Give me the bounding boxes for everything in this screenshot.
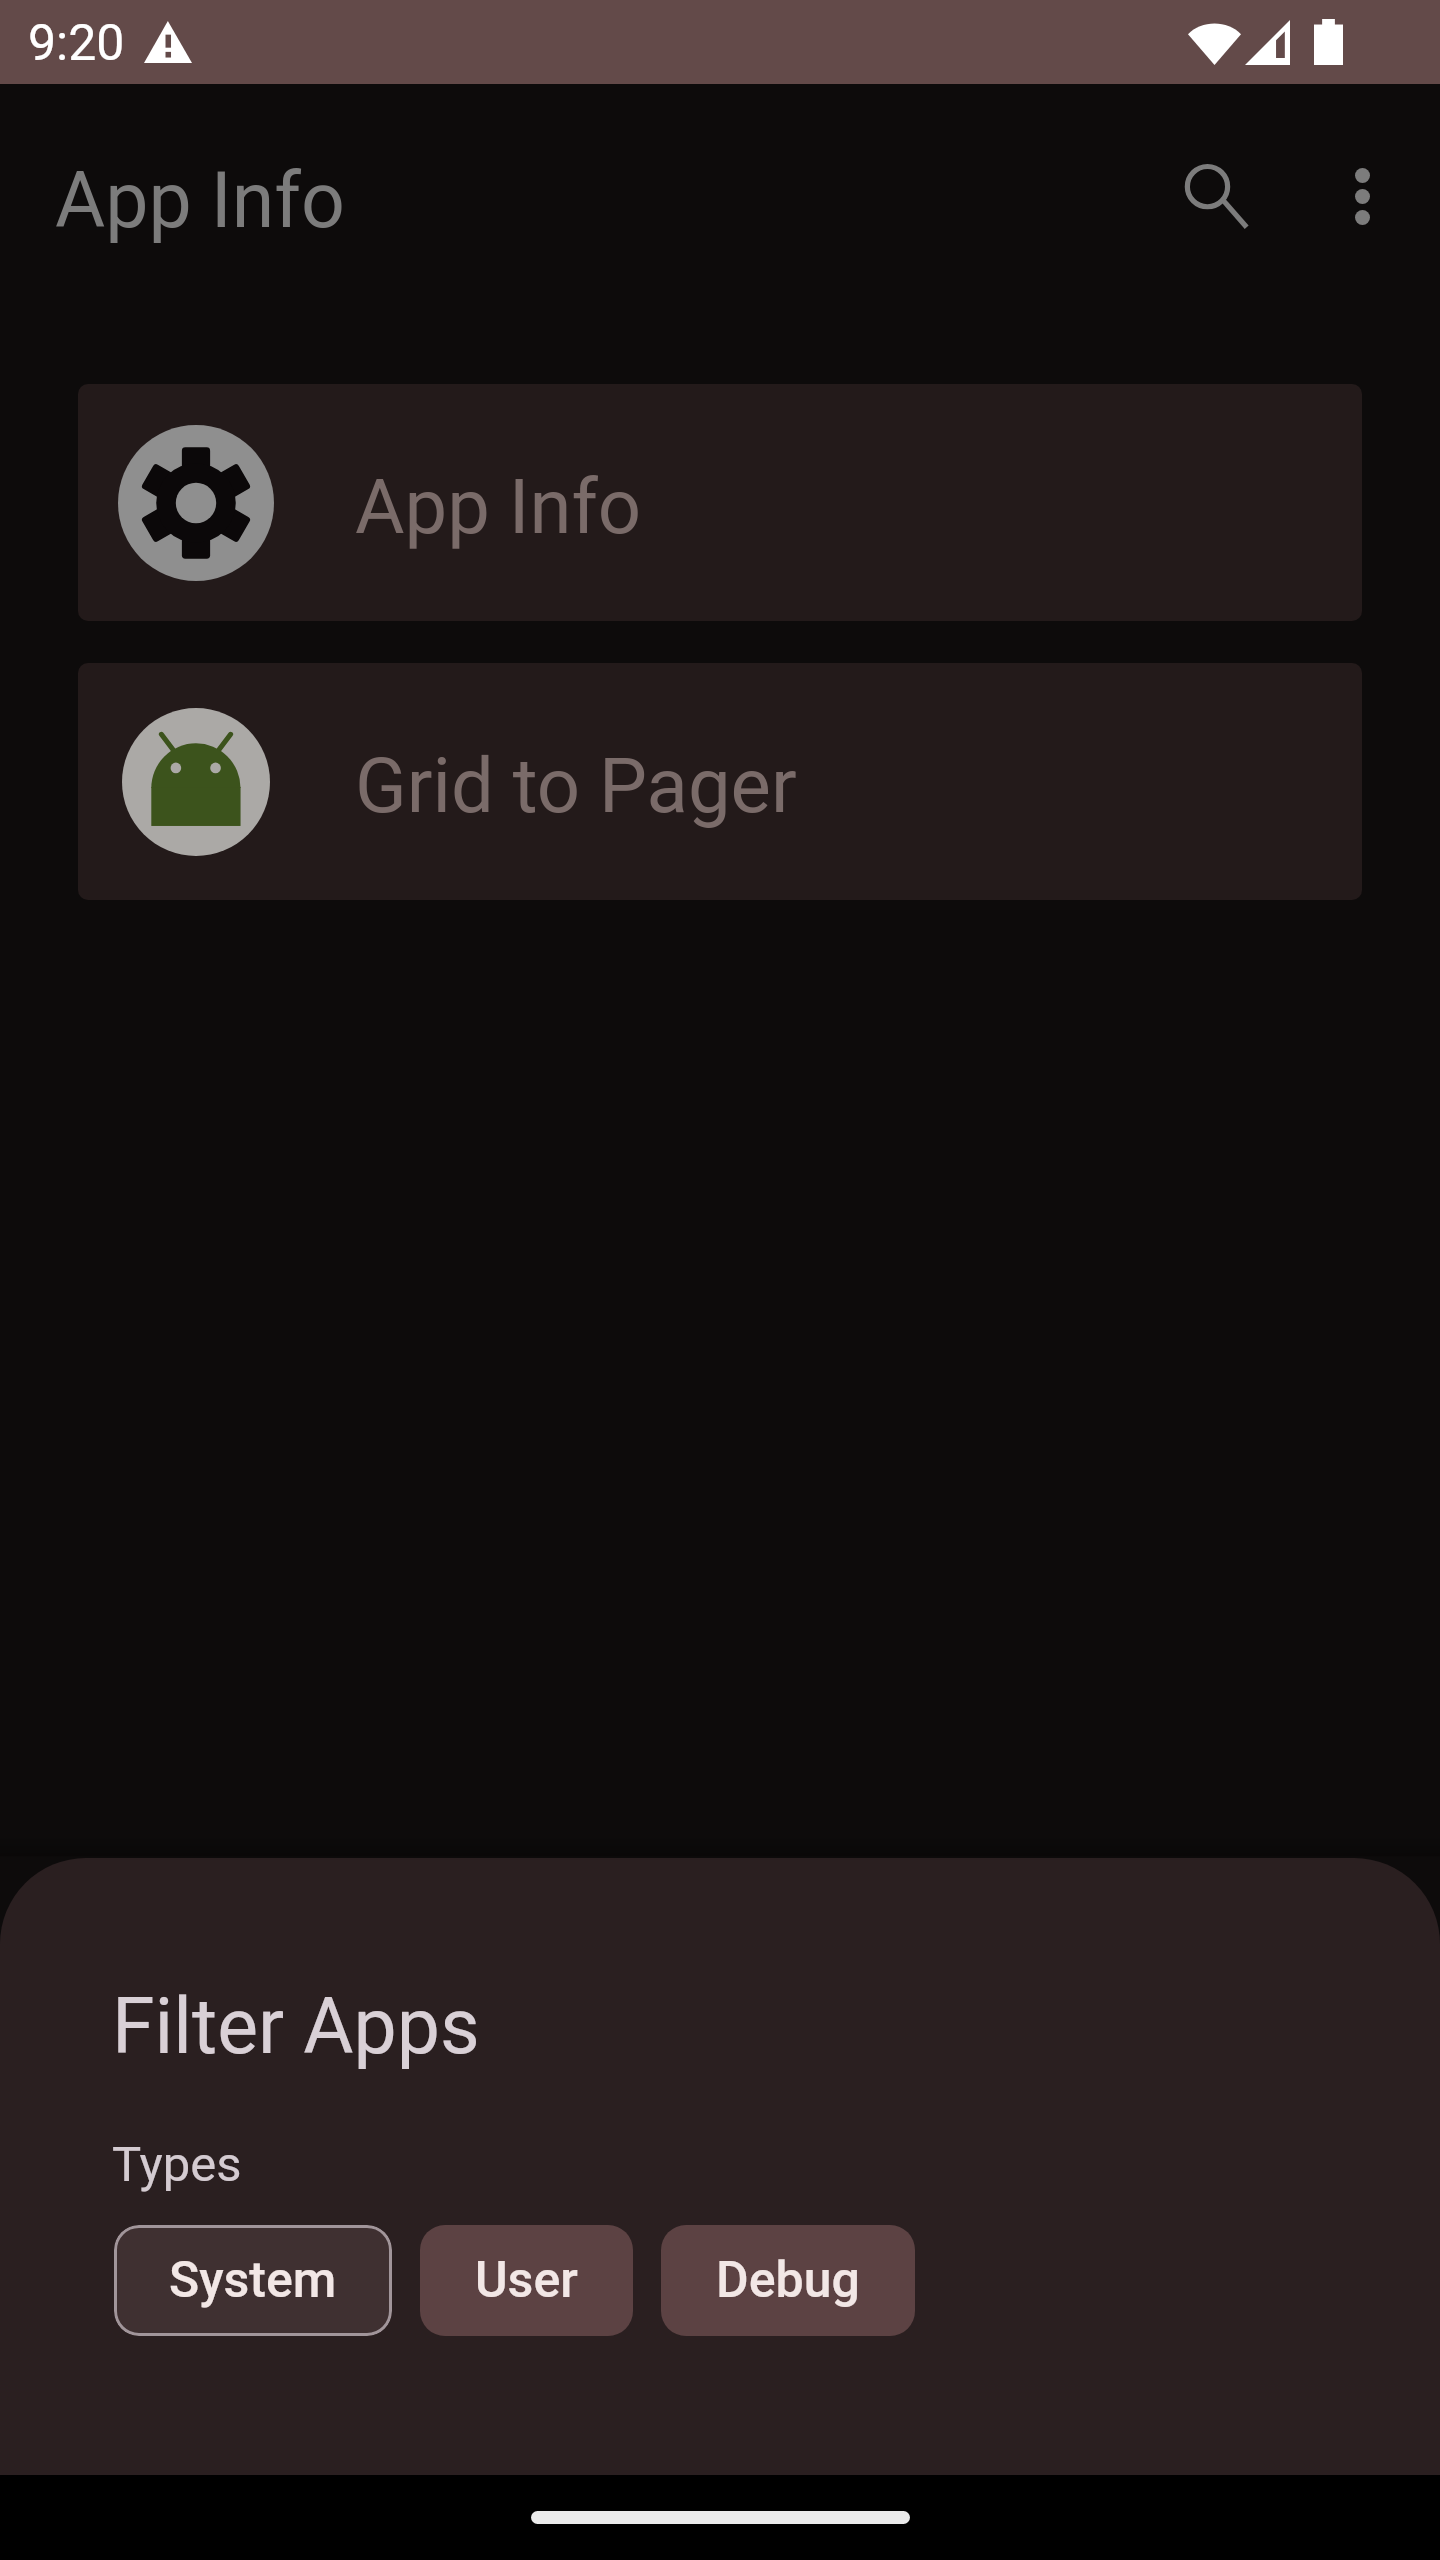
button[interactable]: User <box>420 2225 633 2336</box>
button[interactable]: System <box>114 2225 392 2336</box>
staticText: 9:20 <box>28 14 125 73</box>
staticText: Grid to Pager <box>355 741 797 830</box>
button[interactable]: App Info <box>78 384 1362 621</box>
staticText: Types <box>112 2136 242 2193</box>
staticText: Debug <box>716 2251 860 2310</box>
button[interactable]: Grid to Pager <box>78 663 1362 900</box>
button[interactable]: Debug <box>661 2225 915 2336</box>
staticText: Filter Apps <box>112 1982 480 2072</box>
staticText: System <box>169 2251 337 2310</box>
staticText: App Info <box>355 462 642 551</box>
staticText: User <box>475 2251 578 2310</box>
button[interactable]: More options <box>1306 140 1418 252</box>
button[interactable]: Search <box>1160 140 1272 252</box>
staticText: App Info <box>55 156 345 246</box>
